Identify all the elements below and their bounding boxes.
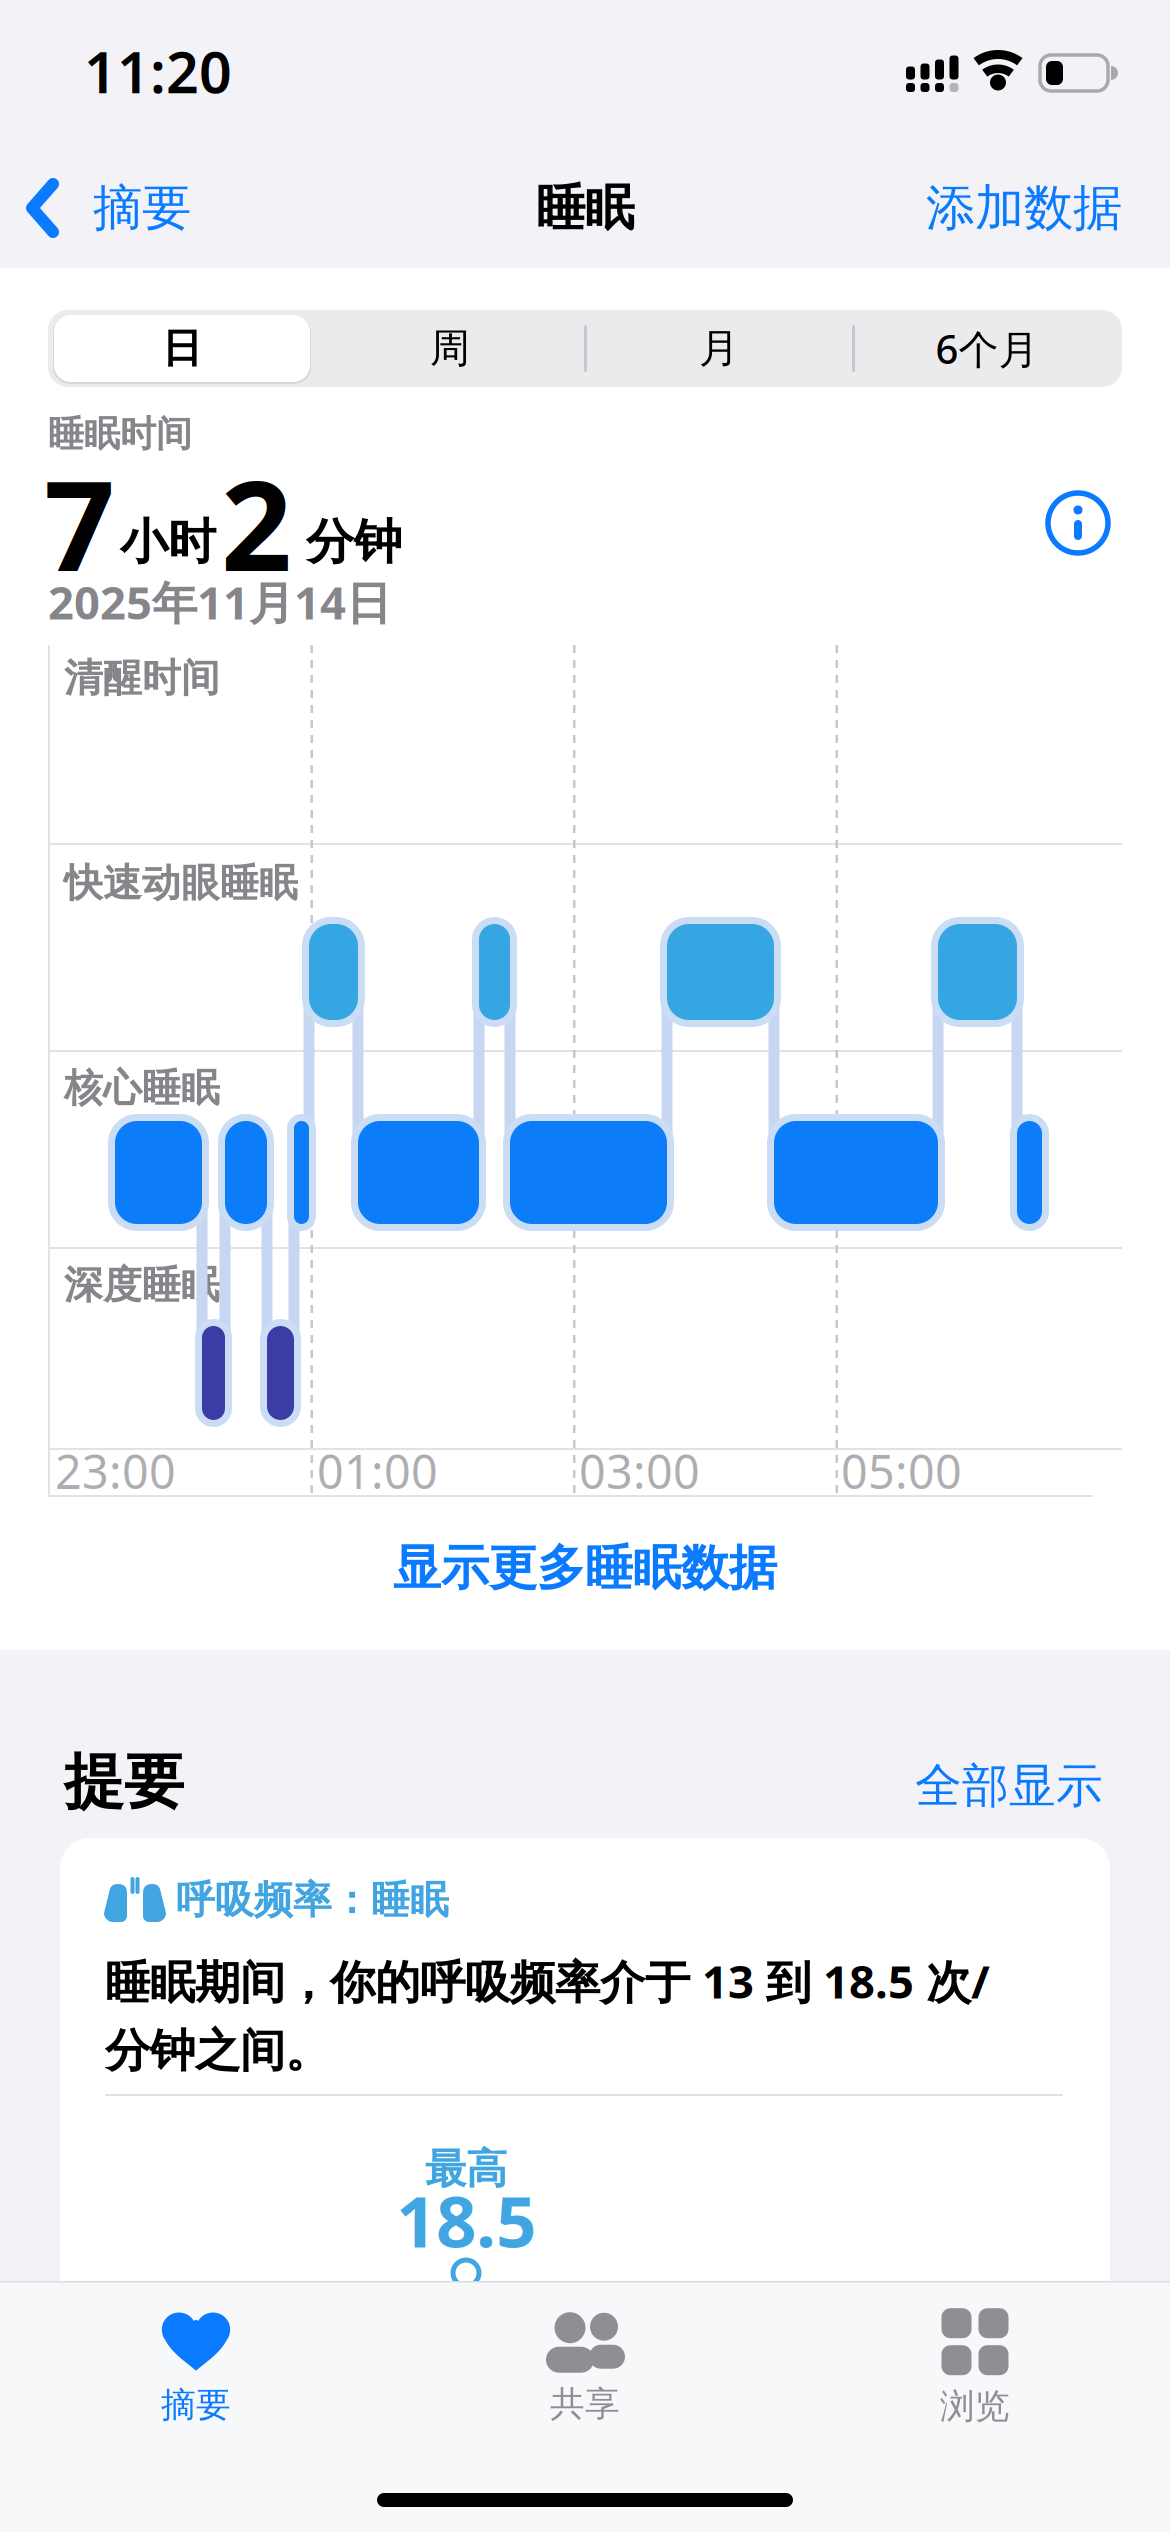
staticText: 睡眠时间 bbox=[48, 412, 192, 456]
staticText: 摘要 bbox=[161, 2384, 231, 2426]
staticText: 核心睡眠 bbox=[64, 1064, 220, 1112]
staticText: 01:00 bbox=[317, 1440, 438, 1502]
button[interactable]: 共享 bbox=[539, 2311, 631, 2425]
staticText: 全部显示 bbox=[915, 1757, 1103, 1815]
staticText: 深度睡眠 bbox=[64, 1261, 220, 1309]
staticText: 提要 bbox=[64, 1745, 184, 1819]
button[interactable]: 6个月 bbox=[857, 310, 1117, 387]
staticText: 分钟之间。 bbox=[105, 2023, 330, 2079]
staticText: 呼吸频率：睡眠 bbox=[176, 1876, 449, 1924]
button[interactable]: 摘要 bbox=[161, 2310, 231, 2426]
staticText: 23:00 bbox=[55, 1440, 176, 1502]
staticText: 03:00 bbox=[579, 1440, 700, 1502]
staticText: 月 bbox=[699, 324, 739, 373]
button[interactable]: 周 bbox=[320, 310, 580, 387]
staticText: 快速动眼睡眠 bbox=[64, 859, 298, 907]
staticText: 睡眠期间，你的呼吸频率介于 13 到 18.5 次/ bbox=[105, 1951, 990, 2011]
staticText: 摘要 bbox=[93, 178, 191, 238]
staticText: 最高 bbox=[425, 2144, 507, 2194]
staticText: 显示更多睡眠数据 bbox=[393, 1538, 777, 1597]
staticText: 18.5 bbox=[396, 2173, 536, 2267]
staticText: 周 bbox=[430, 324, 470, 373]
staticText: 睡眠 bbox=[536, 178, 634, 238]
staticText: 2025年11月14日 bbox=[48, 572, 391, 632]
button[interactable]: 浏览 bbox=[940, 2308, 1010, 2428]
button[interactable]: 月 bbox=[589, 310, 849, 387]
button[interactable]: 添加数据 bbox=[0, 0, 1170, 2532]
staticText: 6个月 bbox=[935, 322, 1038, 375]
staticText: 小时 bbox=[120, 512, 216, 571]
staticText: 05:00 bbox=[841, 1440, 962, 1502]
button[interactable]: 信息 bbox=[1048, 493, 1108, 553]
button[interactable]: 显示更多睡眠数据 bbox=[393, 1538, 777, 1597]
staticText: 日 bbox=[162, 324, 202, 373]
staticText: 共享 bbox=[550, 2383, 620, 2425]
button[interactable]: 日 bbox=[52, 310, 312, 387]
staticText: 7 bbox=[44, 441, 115, 605]
staticText: 11:20 bbox=[84, 33, 232, 109]
button[interactable]: 摘要 bbox=[25, 178, 191, 238]
staticText: 2 bbox=[221, 441, 292, 605]
staticText: 添加数据 bbox=[926, 178, 1122, 238]
staticText: 清醒时间 bbox=[64, 654, 220, 702]
staticText: 浏览 bbox=[940, 2385, 1010, 2428]
button[interactable]: 呼吸频率：睡眠 bbox=[60, 1838, 1110, 2318]
staticText: 分钟 bbox=[306, 512, 402, 571]
button[interactable]: 全部显示 bbox=[0, 0, 1170, 2532]
